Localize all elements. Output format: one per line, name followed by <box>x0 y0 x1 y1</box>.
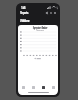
staticText: Well done <box>20 19 30 23</box>
button[interactable]: Share <box>45 11 49 15</box>
staticText: 14:46 <box>21 6 26 10</box>
button[interactable]: Filter <box>49 11 53 15</box>
staticText: Symptom Tracker <box>20 26 58 30</box>
button[interactable]: Home <box>18 85 28 90</box>
button[interactable]: Profile <box>48 85 58 90</box>
staticText: Last 30 days <box>20 29 58 32</box>
button[interactable]: Reports <box>38 85 48 90</box>
button[interactable]: More options <box>53 11 57 15</box>
button[interactable]: Reports <box>20 11 28 15</box>
button[interactable]: Track <box>28 85 38 90</box>
